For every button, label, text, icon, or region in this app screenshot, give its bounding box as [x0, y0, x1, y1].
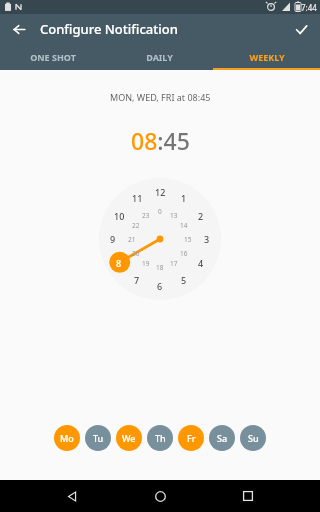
- button[interactable]: Th: [147, 425, 173, 451]
- button[interactable]: DAILY: [106, 44, 213, 70]
- staticText: 17: [170, 259, 178, 268]
- staticText: Tu: [93, 432, 104, 444]
- staticText: 14: [180, 221, 188, 230]
- button[interactable]: ONE SHOT: [0, 44, 106, 70]
- staticText: 10: [114, 210, 125, 222]
- staticText: 23: [142, 211, 150, 220]
- staticText: Sa: [217, 432, 228, 444]
- staticText: 20: [132, 249, 140, 258]
- staticText: Fr: [187, 432, 196, 444]
- button[interactable]: Back: [6, 16, 32, 42]
- staticText: Mo: [60, 432, 74, 444]
- button[interactable]: Back: [56, 480, 88, 512]
- staticText: 4: [198, 257, 204, 269]
- staticText: 12: [155, 186, 166, 198]
- button[interactable]: Save: [288, 16, 314, 42]
- staticText: 9: [110, 233, 116, 245]
- staticText: 22: [132, 221, 140, 230]
- staticText: MON, WED, FRI at 08:45: [110, 91, 211, 103]
- staticText: 3: [204, 233, 210, 245]
- staticText: 1: [181, 192, 187, 204]
- staticText: 6: [157, 280, 163, 292]
- staticText: 7:44: [301, 2, 317, 13]
- button[interactable]: WEEKLY: [213, 44, 320, 70]
- button[interactable]: Fr: [178, 425, 204, 451]
- staticText: Th: [155, 432, 166, 444]
- staticText: Su: [248, 432, 259, 444]
- staticText: 8: [116, 257, 122, 269]
- button[interactable]: Home: [144, 480, 176, 512]
- staticText: 08:45: [131, 125, 190, 156]
- staticText: 16: [180, 249, 188, 258]
- staticText: 5: [181, 274, 187, 286]
- staticText: 7: [134, 274, 140, 286]
- staticText: 21: [128, 235, 136, 244]
- button[interactable]: Hour picker: [99, 178, 221, 300]
- staticText: WEEKLY: [249, 51, 285, 63]
- button[interactable]: Mo: [54, 425, 80, 451]
- staticText: 11: [132, 192, 143, 204]
- staticText: 15: [184, 235, 192, 244]
- staticText: 2: [198, 210, 204, 222]
- staticText: DAILY: [146, 51, 173, 63]
- staticText: 19: [142, 259, 150, 268]
- staticText: We: [122, 432, 136, 444]
- button[interactable]: Tu: [85, 425, 111, 451]
- button[interactable]: Recents: [232, 480, 264, 512]
- staticText: 13: [170, 211, 178, 220]
- staticText: ONE SHOT: [30, 51, 76, 63]
- staticText: 18: [156, 263, 164, 272]
- button[interactable]: We: [116, 425, 142, 451]
- button[interactable]: Sa: [209, 425, 235, 451]
- staticText: Configure Notification: [40, 20, 178, 38]
- button[interactable]: Su: [240, 425, 266, 451]
- staticText: 0: [158, 207, 162, 216]
